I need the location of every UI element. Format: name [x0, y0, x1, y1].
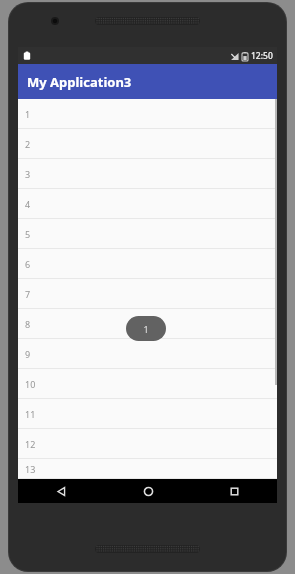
button[interactable]: 10 [18, 369, 277, 399]
staticText: 8 [25, 318, 31, 330]
button[interactable]: 2 [18, 129, 277, 159]
staticText: 7 [25, 288, 31, 300]
button[interactable]: 8 [18, 309, 277, 339]
staticText: 13 [25, 463, 36, 475]
staticText: My Application3 [27, 73, 132, 91]
staticText: 11 [25, 408, 36, 420]
button[interactable]: Recent apps [191, 479, 277, 503]
staticText: 6 [25, 258, 31, 270]
button[interactable]: 6 [18, 249, 277, 279]
button[interactable]: Home [105, 479, 191, 503]
staticText: 10 [25, 378, 36, 390]
button[interactable]: 9 [18, 339, 277, 369]
staticText: 4 [25, 198, 31, 210]
button[interactable]: My Application3 [18, 64, 277, 99]
staticText: 1 [25, 108, 31, 120]
staticText: 12 [25, 438, 36, 450]
button[interactable]: 12 [18, 429, 277, 459]
button[interactable]: 7 [18, 279, 277, 309]
button[interactable]: 11 [18, 399, 277, 429]
button[interactable]: 3 [18, 159, 277, 189]
button[interactable]: Back [18, 479, 105, 503]
button[interactable]: 1 [126, 316, 166, 341]
button[interactable]: 5 [18, 219, 277, 249]
staticText: 5 [25, 228, 31, 240]
button[interactable]: 13 [18, 459, 277, 479]
staticText: 2 [25, 138, 31, 150]
button[interactable]: 4 [18, 189, 277, 219]
button[interactable]: 1 [18, 99, 277, 129]
staticText: 3 [25, 168, 31, 180]
staticText: 12:50 [251, 50, 273, 62]
staticText: 1 [143, 323, 149, 335]
staticText: 9 [25, 348, 31, 360]
